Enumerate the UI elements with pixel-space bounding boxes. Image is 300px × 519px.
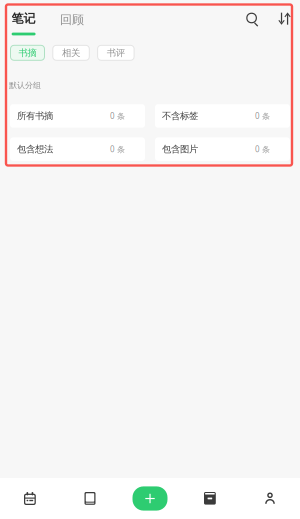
staticText: 0 条 <box>255 111 270 121</box>
button[interactable]: 所有书摘 <box>10 104 145 128</box>
staticText: 0 条 <box>110 144 125 154</box>
button[interactable]: Sort <box>279 12 291 25</box>
staticText: 不含标签 <box>162 110 198 122</box>
staticText: 书摘 <box>18 47 36 59</box>
button[interactable]: 包含图片 <box>155 137 290 161</box>
staticText: 所有书摘 <box>17 110 53 122</box>
button[interactable]: Add <box>120 478 180 519</box>
staticText: 相关 <box>62 47 80 59</box>
button[interactable]: Archive <box>180 478 240 519</box>
button[interactable]: 笔记 <box>12 12 36 35</box>
button[interactable]: 不含标签 <box>155 104 290 128</box>
button[interactable]: 书评 <box>98 45 134 60</box>
button[interactable]: 相关 <box>53 45 89 60</box>
button[interactable]: Calendar <box>0 478 60 519</box>
staticText: 0 条 <box>110 111 125 121</box>
staticText: 书评 <box>107 47 125 59</box>
staticText: 包含想法 <box>17 143 53 155</box>
button[interactable]: 回顾 <box>60 14 84 26</box>
staticText: 回顾 <box>60 12 84 27</box>
button[interactable]: 书摘 <box>10 45 44 60</box>
button[interactable]: Search <box>246 12 259 27</box>
staticText: 0 条 <box>255 144 270 154</box>
staticText: 默认分组 <box>9 80 41 90</box>
button[interactable]: 包含想法 <box>10 137 145 161</box>
staticText: 笔记 <box>12 11 36 26</box>
button[interactable]: Notebook <box>60 478 120 519</box>
button[interactable]: Profile <box>240 478 300 519</box>
staticText: 包含图片 <box>162 143 198 155</box>
